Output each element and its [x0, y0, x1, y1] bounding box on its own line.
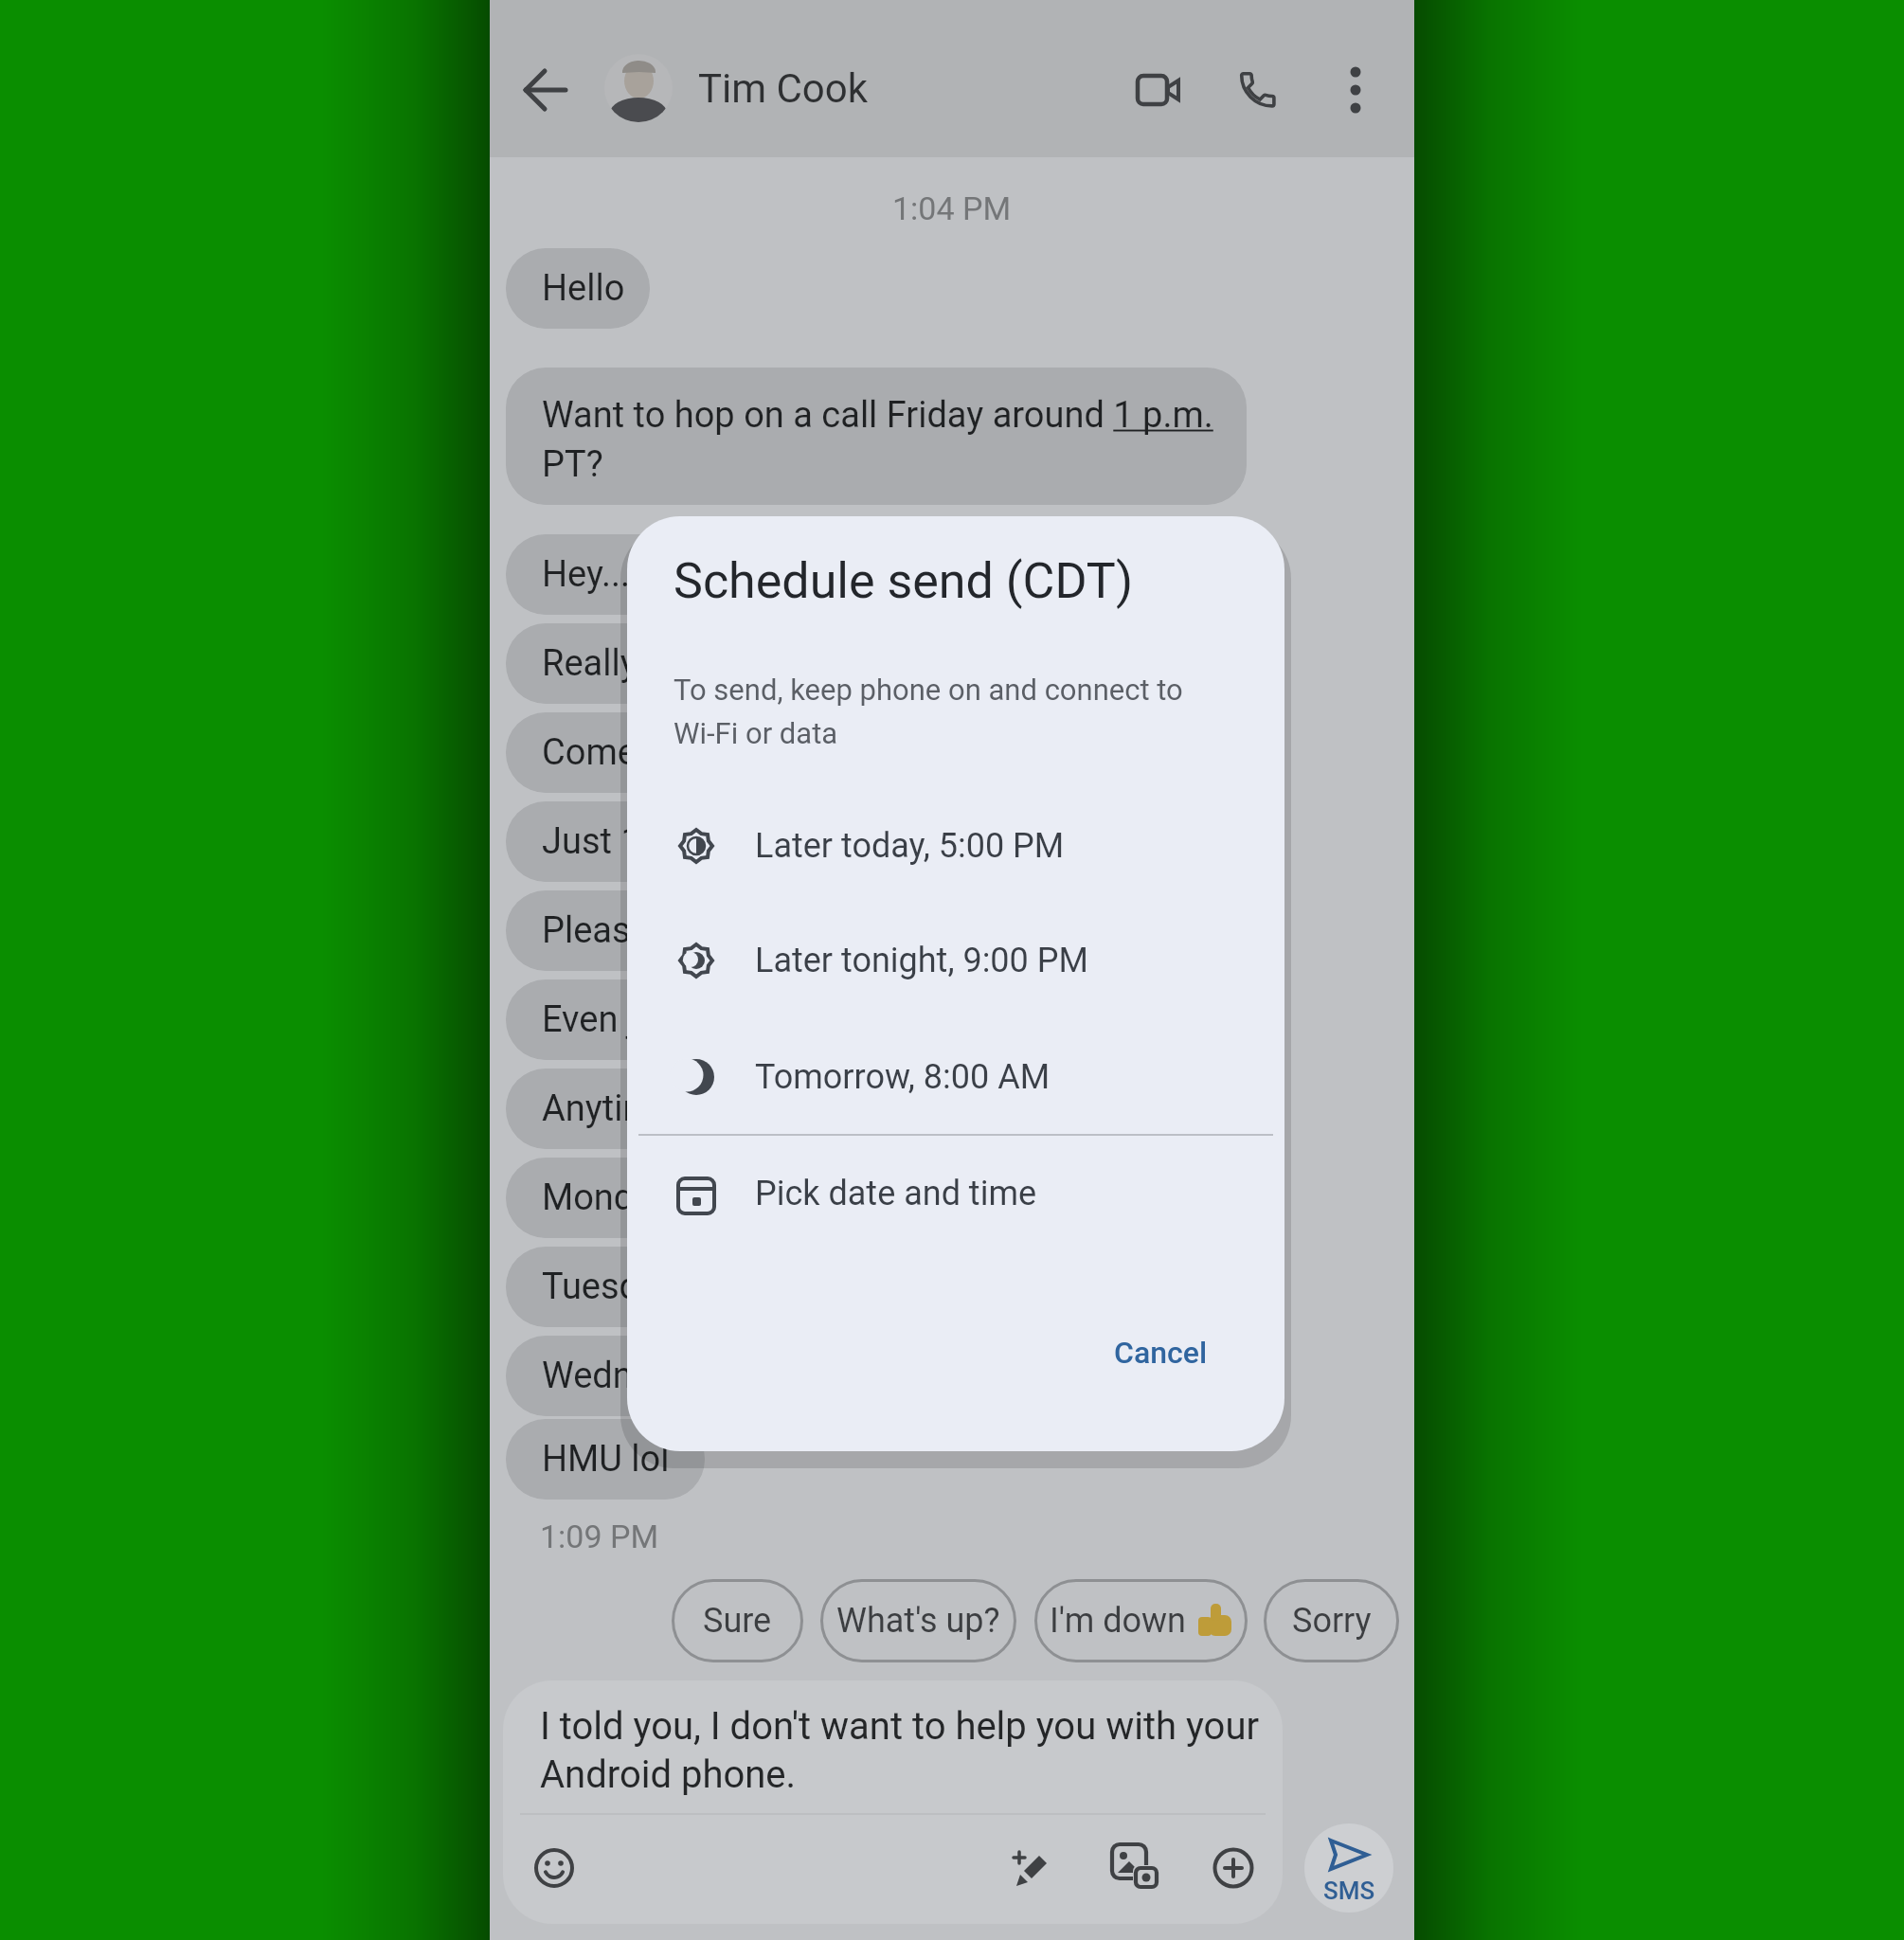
staticText: Please [542, 909, 650, 952]
staticText: Tim Cook [698, 65, 869, 112]
button[interactable] [604, 54, 673, 122]
button[interactable]: Later tonight, 9:00 PM [650, 919, 1256, 1002]
button[interactable] [1137, 68, 1182, 112]
button[interactable]: What's up? [820, 1579, 1016, 1662]
staticText: I'm down [1050, 1601, 1186, 1641]
button[interactable] [1212, 1846, 1255, 1890]
staticText: Tuesda [542, 1266, 659, 1308]
staticText: Later today, 5:00 PM [755, 826, 1065, 866]
staticText: Later tonight, 9:00 PM [755, 941, 1088, 980]
staticText: Schedule send (CDT) [674, 552, 1133, 610]
staticText: 1:09 PM [540, 1518, 659, 1555]
staticText: Even j [542, 998, 636, 1041]
staticText: Tomorrow, 8:00 AM [755, 1057, 1051, 1097]
staticText: Wi-Fi or data [674, 716, 838, 750]
staticText: Wednes [542, 1355, 671, 1397]
staticText: 1:04 PM [892, 189, 1012, 227]
staticText: To send, keep phone on and connect to [674, 673, 1183, 707]
staticText: Hello [542, 267, 625, 310]
staticText: SMS [1323, 1877, 1375, 1905]
staticText: Sorry [1292, 1601, 1372, 1641]
staticText: Really [542, 642, 638, 685]
staticText: Sure [703, 1601, 772, 1641]
staticText: Monday [542, 1177, 671, 1219]
button[interactable] [532, 1846, 576, 1890]
button[interactable] [524, 68, 567, 112]
staticText: Cancel [1114, 1335, 1208, 1371]
button[interactable]: Pick date and time [650, 1152, 1256, 1235]
staticText: I told you, I don't want to help you wit… [540, 1704, 1260, 1749]
staticText: Android phone. [540, 1752, 797, 1797]
button[interactable] [1110, 1842, 1161, 1894]
button[interactable]: Sure [672, 1579, 803, 1662]
staticText: Come o [542, 731, 666, 774]
button[interactable] [1011, 1846, 1054, 1890]
button[interactable]: Tomorrow, 8:00 AM [650, 1035, 1256, 1119]
staticText: Hey... [542, 553, 631, 596]
staticText: Pick date and time [755, 1174, 1037, 1213]
button[interactable]: SMS [1304, 1823, 1393, 1913]
staticText: Just 1 [542, 820, 641, 863]
button[interactable] [1340, 66, 1371, 114]
button[interactable]: Sorry [1264, 1579, 1399, 1662]
staticText: Anytim [542, 1087, 655, 1130]
button[interactable]: Cancel [1089, 1320, 1231, 1386]
button[interactable]: I'm down [1034, 1579, 1248, 1662]
button[interactable]: Later today, 5:00 PM [650, 804, 1256, 888]
staticText: PT? [542, 443, 603, 486]
staticText: What's up? [836, 1601, 1000, 1641]
staticText: Want to hop on a call Friday around 1 p.… [542, 394, 1213, 437]
staticText: HMU lol [542, 1438, 670, 1481]
button[interactable] [1236, 68, 1280, 112]
